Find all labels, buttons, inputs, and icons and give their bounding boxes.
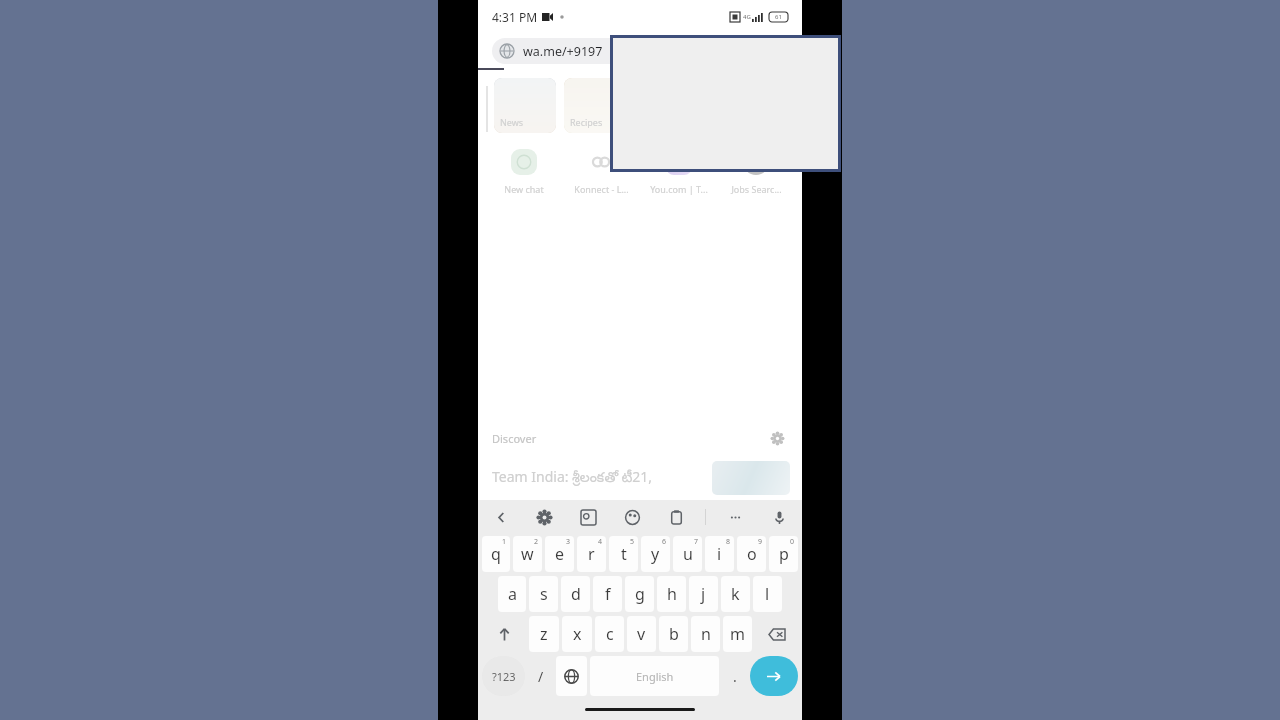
staticText: 7 [694,537,699,547]
staticText: 4G [743,13,751,21]
button[interactable]: Jobs Searc... [720,147,792,197]
staticText: 3 [566,537,571,547]
staticText: 4:31 PM [492,9,538,25]
button[interactable]: / [528,656,553,696]
staticText: w [521,543,534,565]
button[interactable]: d [561,576,590,612]
button[interactable]: q [482,536,510,572]
button[interactable]: z [529,616,559,652]
staticText: New chat [504,183,544,195]
staticText: j [701,583,706,605]
button[interactable]: u [673,536,702,572]
staticText: n [701,623,711,645]
button[interactable]: More options [720,502,750,532]
button[interactable]: News [494,78,556,133]
staticText: k [731,583,740,605]
staticText: 6 [662,537,667,547]
button[interactable]: l [753,576,782,612]
button[interactable]: Konnect - L... [565,147,637,197]
staticText: a [508,583,517,605]
button[interactable]: o [737,536,766,572]
button[interactable]: English [590,656,719,696]
staticText: v [637,623,646,645]
button[interactable]: Keyboard settings [529,502,559,532]
button[interactable]: j [689,576,718,612]
button[interactable]: n [691,616,720,652]
staticText: l [765,583,770,605]
button[interactable]: s [529,576,558,612]
button[interactable]: t [609,536,638,572]
button[interactable]: g [625,576,654,612]
staticText: ?123 [492,669,516,684]
staticText: . [733,667,737,686]
staticText: m [730,623,745,645]
staticText: o [747,543,757,565]
button[interactable]: Back [486,502,516,532]
button[interactable]: New chat [488,147,560,197]
button[interactable]: Recipes [564,78,626,133]
staticText: 1 [502,537,507,547]
staticText: c [606,623,614,645]
button[interactable]: Clipboard [661,502,691,532]
button[interactable]: f [593,576,622,612]
staticText: 8 [726,537,731,547]
button[interactable]: y [641,536,670,572]
button[interactable]: r [577,536,606,572]
staticText: / [538,667,544,686]
staticText: b [669,623,679,645]
staticText: You.com | T... [650,183,708,195]
staticText: 5 [630,537,635,547]
button[interactable]: v [627,616,656,652]
button[interactable]: c [595,616,624,652]
staticText: d [571,583,581,605]
staticText: Discover [492,431,537,446]
staticText: 9 [758,537,763,547]
staticText: e [555,543,565,565]
staticText: Konnect - L... [574,183,629,195]
staticText: 0 [790,537,795,547]
button[interactable]: Team India: శ్రీలంకతో టీ21, [492,456,802,500]
staticText: r [588,543,595,565]
staticText: Recipes [570,116,603,128]
staticText: h [667,583,677,605]
button[interactable]: Backspace [755,614,798,654]
button[interactable]: You.com | T... [643,147,715,197]
button[interactable]: Shift [482,614,526,654]
staticText: f [605,583,611,605]
button[interactable]: i [705,536,734,572]
button[interactable]: wa.me/+9197 [492,38,788,64]
staticText: English [636,669,674,684]
staticText: t [621,543,627,565]
button[interactable]: Themes [617,502,647,532]
button[interactable]: w [513,536,542,572]
staticText: s [540,583,548,605]
button[interactable]: . [722,656,747,696]
button[interactable]: ?123 [482,656,525,696]
staticText: u [683,543,693,565]
button[interactable]: k [721,576,750,612]
staticText: 2 [534,537,539,547]
staticText: y [651,543,660,565]
staticText: News [500,116,524,128]
staticText: q [491,543,501,565]
button[interactable]: e [545,536,574,572]
staticText: x [573,623,582,645]
button[interactable]: b [659,616,688,652]
staticText: Team India: శ్రీలంకతో టీ21, [492,467,712,489]
button[interactable]: Settings [766,427,788,449]
button[interactable]: x [562,616,592,652]
button[interactable]: Change language [556,656,587,696]
button[interactable]: a [498,576,526,612]
staticText: z [540,623,548,645]
button[interactable]: Translate [573,502,603,532]
button[interactable]: Go [750,656,798,696]
staticText: Jobs Searc... [731,183,782,195]
button[interactable]: h [657,576,686,612]
staticText: 61 [775,13,782,21]
button[interactable]: m [723,616,752,652]
staticText: g [635,583,645,605]
button[interactable]: Voice input [764,502,794,532]
button[interactable]: p [769,536,798,572]
staticText: wa.me/+9197 [523,43,603,60]
